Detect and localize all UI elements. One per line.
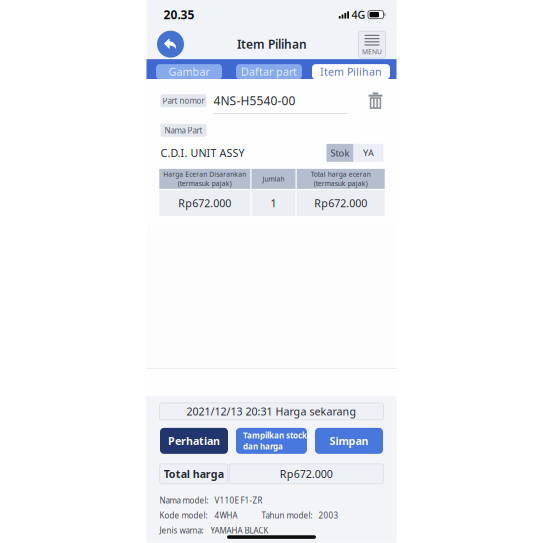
staticText: Simpan xyxy=(329,434,368,448)
staticText: MENU xyxy=(362,47,382,56)
staticText: dan harga xyxy=(243,441,283,452)
staticText: Rp672.000 xyxy=(178,196,231,210)
staticText: Tampilkan stock xyxy=(243,430,307,441)
staticText: Daftar part xyxy=(241,65,297,79)
staticText: Part nomor xyxy=(162,95,204,106)
staticText: (termasuk pajak) xyxy=(314,179,368,188)
button[interactable]: Perhatian xyxy=(160,428,228,454)
staticText: YA xyxy=(363,147,374,159)
button[interactable]: YA xyxy=(353,144,383,162)
button[interactable]: Stok xyxy=(326,144,353,162)
staticText: 20.35 xyxy=(163,7,194,23)
staticText: Item Pilihan xyxy=(320,65,382,79)
staticText: 4G xyxy=(351,8,365,22)
staticText: Gambar xyxy=(168,65,209,79)
staticText: Jumlah xyxy=(262,174,284,183)
button[interactable]: Gambar xyxy=(156,64,222,79)
staticText: 2021/12/13 20:31 Harga sekarang xyxy=(186,404,356,418)
staticText: 4WHA xyxy=(214,510,237,521)
button[interactable]: Daftar part xyxy=(236,64,302,79)
staticText: Stok xyxy=(330,147,349,159)
staticText: Item Pilihan xyxy=(237,36,307,52)
staticText: Nama Part xyxy=(164,125,202,136)
staticText: Rp672.000 xyxy=(280,467,333,481)
staticText: (termasuk pajak) xyxy=(178,179,232,188)
staticText: Total harga xyxy=(164,467,224,481)
staticText: Tahun model: xyxy=(261,510,312,521)
button[interactable]: Simpan xyxy=(315,428,383,454)
staticText: Total harga eceran xyxy=(311,170,371,179)
staticText: Harga Eceran Disarankan xyxy=(163,170,246,179)
button[interactable]: Tampilkan stock xyxy=(236,428,307,454)
button[interactable]: Item Pilihan xyxy=(312,64,390,79)
staticText: V110E F1-ZR xyxy=(214,495,262,506)
staticText: 2003 xyxy=(318,510,338,521)
staticText: Rp672.000 xyxy=(314,196,367,210)
staticText: C.D.I. UNIT ASSY xyxy=(160,146,244,160)
staticText: Jenis warna: xyxy=(159,525,203,536)
button[interactable]: Back xyxy=(155,25,185,59)
staticText: Perhatian xyxy=(168,434,220,448)
staticText: Nama model: xyxy=(159,495,208,506)
staticText: YAMAHA BLACK xyxy=(210,525,268,536)
staticText: 4NS-H5540-00 xyxy=(213,93,295,109)
button[interactable]: Menu xyxy=(358,26,385,58)
staticText: 1 xyxy=(270,196,276,210)
staticText: Kode model: xyxy=(159,510,207,521)
